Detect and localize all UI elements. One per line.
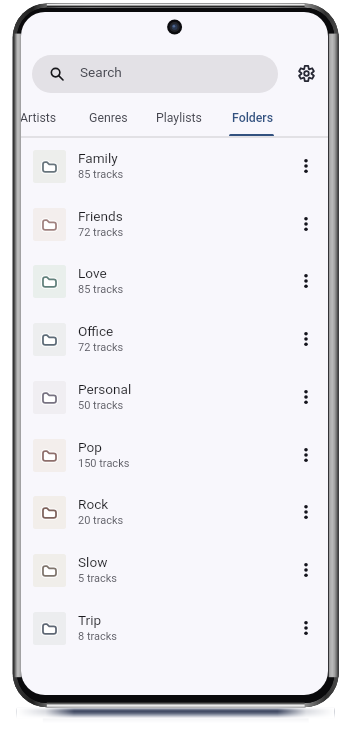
staticText: 20 tracks [78, 514, 124, 527]
staticText: 8 tracks [78, 630, 118, 643]
staticText: Personal [78, 381, 132, 397]
staticText: Trip [78, 612, 102, 628]
button[interactable]: Artists [21, 102, 67, 133]
button[interactable]: Rock [21, 483, 328, 541]
button[interactable]: Pop [21, 426, 328, 484]
button[interactable]: More options [289, 553, 323, 587]
button[interactable]: More options [289, 380, 323, 414]
button[interactable]: More options [289, 207, 323, 241]
staticText: Office [78, 323, 114, 339]
staticText: Love [78, 265, 107, 281]
button[interactable]: Office [21, 310, 328, 368]
staticText: 72 tracks [78, 341, 124, 354]
button[interactable]: Trip [21, 599, 328, 657]
button[interactable]: More options [289, 495, 323, 529]
button[interactable]: Family [21, 137, 328, 195]
button[interactable]: More options [289, 611, 323, 645]
staticText: Rock [78, 496, 109, 512]
button[interactable]: More options [289, 438, 323, 472]
staticText: 5 tracks [78, 572, 118, 585]
staticText: 150 tracks [78, 457, 130, 470]
button[interactable]: Personal [21, 368, 328, 426]
button[interactable]: Friends [21, 195, 328, 253]
staticText: Family [78, 150, 118, 166]
staticText: 72 tracks [78, 226, 124, 239]
button[interactable]: More options [289, 322, 323, 356]
staticText: Genres [89, 111, 128, 125]
button[interactable]: More options [289, 149, 323, 183]
button[interactable]: Search [32, 55, 278, 93]
button[interactable]: Folders [222, 102, 284, 133]
staticText: 85 tracks [78, 168, 124, 181]
staticText: 50 tracks [78, 399, 124, 412]
staticText: Pop [78, 439, 102, 455]
button[interactable]: More options [289, 264, 323, 298]
button[interactable]: Settings [287, 54, 325, 92]
staticText: Playlists [156, 111, 202, 125]
staticText: Artists [21, 111, 57, 125]
staticText: Friends [78, 208, 123, 224]
staticText: Search [80, 64, 122, 80]
button[interactable]: Love [21, 252, 328, 310]
button[interactable]: Genres [79, 102, 138, 133]
staticText: Slow [78, 554, 108, 570]
button[interactable]: Playlists [146, 102, 212, 133]
button[interactable]: Slow [21, 541, 328, 599]
staticText: 85 tracks [78, 283, 124, 296]
staticText: Folders [232, 111, 274, 125]
